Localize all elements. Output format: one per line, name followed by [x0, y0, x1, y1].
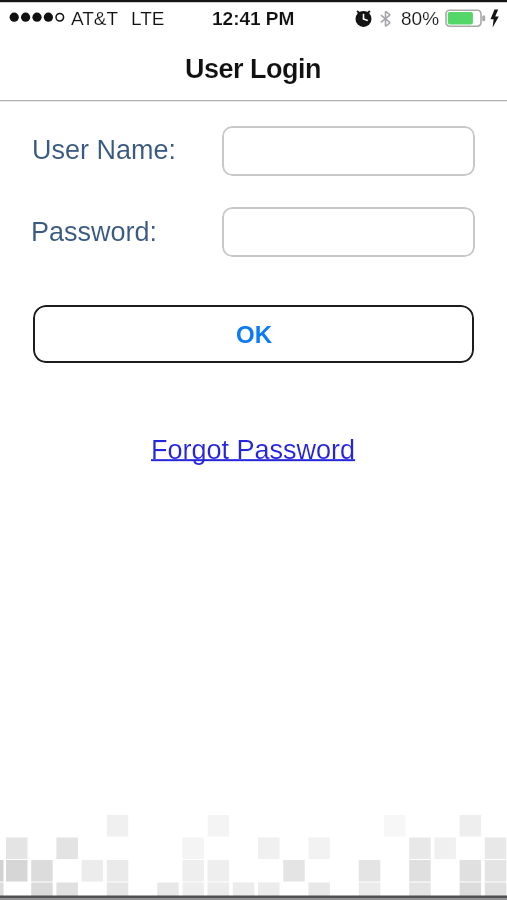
staticText: OK — [236, 321, 272, 348]
staticText: 12:41 PM — [212, 8, 295, 29]
staticText: 80% — [401, 8, 440, 29]
staticText: User Login — [185, 54, 322, 84]
staticText: Password: — [31, 217, 158, 247]
button[interactable]: OK — [33, 305, 474, 363]
staticText: AT&T — [71, 8, 119, 29]
staticText: Forgot Password — [151, 435, 356, 465]
button[interactable] — [222, 207, 475, 257]
staticText: LTE — [131, 8, 165, 29]
staticText: User Name: — [32, 135, 177, 165]
button[interactable]: Forgot Password — [151, 435, 356, 465]
button[interactable] — [222, 126, 475, 176]
